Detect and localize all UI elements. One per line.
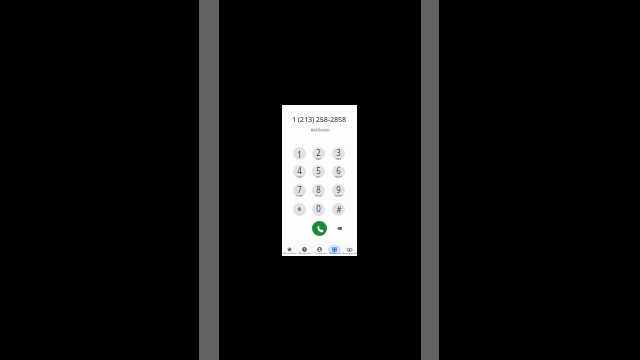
staticText: Add Number bbox=[311, 128, 330, 132]
staticText: 6 bbox=[336, 165, 341, 176]
staticText: 3 bbox=[336, 147, 341, 158]
staticText: DEF bbox=[335, 158, 342, 160]
staticText: Keypad bbox=[329, 252, 341, 254]
staticText: MNO bbox=[334, 176, 343, 178]
button[interactable]: 4 bbox=[293, 165, 306, 178]
staticText: Voicemail bbox=[342, 252, 357, 254]
staticText: JKL bbox=[316, 176, 321, 178]
staticText: 1 (213) 258-2858 bbox=[292, 114, 347, 124]
staticText: 9 bbox=[336, 184, 341, 195]
staticText: 2 bbox=[316, 147, 321, 158]
button[interactable]: # bbox=[332, 203, 345, 216]
staticText: Recents bbox=[299, 252, 311, 254]
button[interactable]: 6 bbox=[332, 165, 345, 178]
button[interactable]: 0 bbox=[312, 203, 325, 216]
staticText: 5 bbox=[316, 165, 321, 176]
staticText: 0 bbox=[316, 203, 321, 214]
staticText: + bbox=[318, 214, 320, 216]
staticText: Contacts bbox=[313, 252, 327, 254]
button[interactable]: Contacts bbox=[312, 242, 327, 256]
staticText: PQRS bbox=[295, 195, 304, 197]
staticText: ABC bbox=[315, 158, 322, 160]
staticText: # bbox=[336, 204, 342, 215]
staticText: 1 bbox=[297, 149, 302, 160]
staticText: TUV bbox=[315, 195, 322, 197]
button[interactable]: 8 bbox=[312, 184, 325, 197]
staticText: 7 bbox=[297, 184, 302, 195]
staticText: 4 bbox=[297, 165, 302, 176]
staticText: 8 bbox=[316, 184, 321, 195]
button[interactable]: 3 bbox=[332, 147, 345, 160]
button[interactable]: 9 bbox=[332, 184, 345, 197]
button[interactable]: 1 bbox=[293, 147, 306, 160]
button[interactable]: * bbox=[293, 203, 306, 216]
button[interactable]: Recents bbox=[297, 242, 312, 256]
button[interactable]: Add Number bbox=[308, 127, 332, 133]
button[interactable]: Keypad bbox=[327, 242, 342, 256]
button[interactable]: Call bbox=[312, 221, 327, 236]
staticText: WXYZ bbox=[334, 195, 343, 197]
staticText: Favorites bbox=[283, 252, 297, 254]
button[interactable]: Backspace bbox=[334, 223, 344, 233]
button[interactable]: 2 bbox=[312, 147, 325, 160]
button[interactable]: 5 bbox=[312, 165, 325, 178]
button[interactable]: Favorites bbox=[282, 242, 297, 256]
button[interactable]: Voicemail bbox=[342, 242, 357, 256]
staticText: * bbox=[297, 205, 302, 216]
button[interactable]: 7 bbox=[293, 184, 306, 197]
staticText: GHI bbox=[296, 176, 303, 178]
